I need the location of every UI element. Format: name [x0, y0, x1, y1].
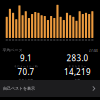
- staticText: 自己ベストを表示: [3, 86, 35, 91]
- staticText: 14,219: [64, 67, 91, 77]
- staticText: 歩数: [74, 78, 80, 82]
- staticText: 27:44: [88, 47, 97, 53]
- staticText: 9.1: [20, 53, 32, 63]
- staticText: キロカロリー: [68, 65, 86, 68]
- staticText: 平均心拍数: [18, 78, 33, 82]
- staticText: 283.0: [66, 53, 88, 63]
- staticText: キロメートル／時: [14, 65, 38, 68]
- button[interactable]: 自己ベストを表示: [0, 80, 100, 97]
- staticText: 70.7: [17, 67, 34, 77]
- staticText: 平均ペース: [2, 48, 22, 53]
